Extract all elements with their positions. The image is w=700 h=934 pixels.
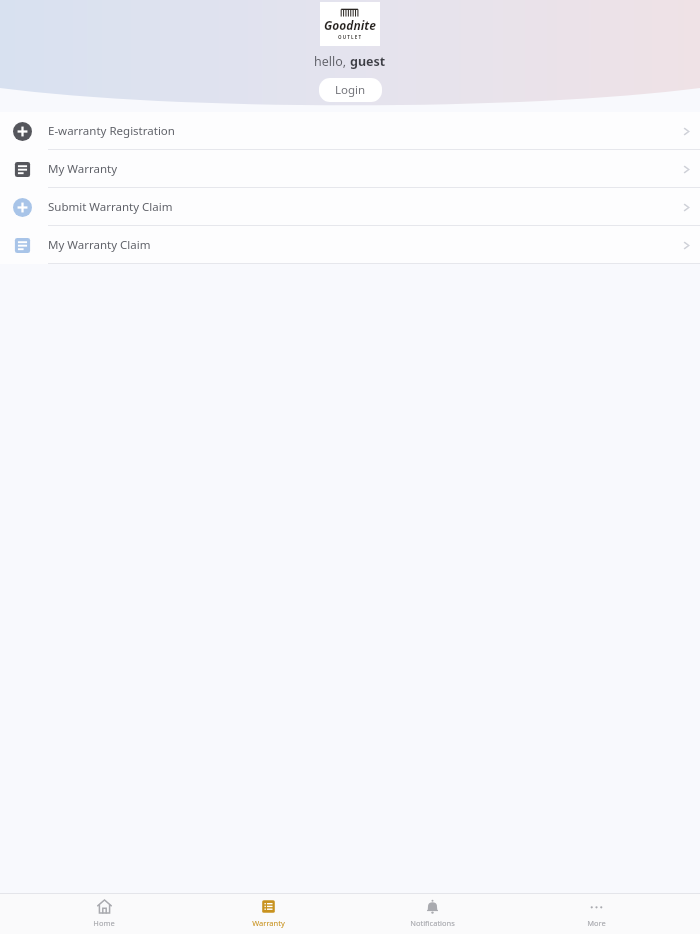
staticText: Notifications (410, 918, 455, 928)
staticText: E-warranty Registration (48, 123, 175, 139)
button[interactable]: Notifications (372, 898, 492, 928)
button[interactable]: My Warranty (0, 150, 700, 188)
staticText: More (587, 918, 606, 928)
staticText: Login (335, 82, 366, 98)
button[interactable]: More (536, 898, 656, 928)
staticText: guest (350, 53, 386, 70)
staticText: O U T L E T (338, 34, 362, 40)
staticText: Submit Warranty Claim (48, 199, 173, 215)
staticText: hello, (314, 53, 350, 70)
staticText: My Warranty Claim (48, 237, 151, 253)
button[interactable]: Login (319, 78, 382, 102)
staticText: Goodnite (324, 17, 376, 33)
staticText: My Warranty (48, 161, 118, 177)
staticText: Home (93, 918, 115, 928)
button[interactable]: E-warranty Registration (0, 112, 700, 150)
button[interactable]: Home (44, 898, 164, 928)
button[interactable]: Submit Warranty Claim (0, 188, 700, 226)
button[interactable]: Warranty (208, 898, 328, 928)
button[interactable]: My Warranty Claim (0, 226, 700, 264)
staticText: Warranty (252, 918, 285, 928)
